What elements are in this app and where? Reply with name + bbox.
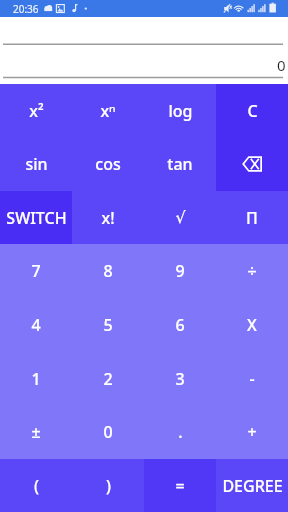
button[interactable]: 1 — [0, 352, 72, 405]
staticText: tan — [167, 153, 193, 175]
button[interactable]: x² — [0, 84, 72, 137]
staticText: cos — [95, 153, 121, 175]
button[interactable]: X — [216, 298, 288, 352]
staticText: ( — [34, 475, 39, 497]
button[interactable]: . — [144, 405, 216, 459]
button[interactable]: 8 — [72, 244, 144, 298]
staticText: 0 — [277, 55, 286, 75]
staticText: x² — [29, 100, 44, 122]
button[interactable]: cos — [72, 137, 144, 191]
button[interactable]: xⁿ — [72, 84, 144, 137]
button[interactable]: ÷ — [216, 244, 288, 298]
staticText: 4 — [31, 314, 41, 336]
staticText: SWITCH — [6, 207, 67, 229]
staticText: x! — [101, 207, 115, 229]
staticText: = — [175, 475, 185, 497]
button[interactable]: 7 — [0, 244, 72, 298]
button[interactable]: + — [216, 405, 288, 459]
staticText: 3 — [175, 368, 185, 390]
button[interactable]: 3 — [144, 352, 216, 405]
button[interactable]: log — [144, 84, 216, 137]
button[interactable]: 5 — [72, 298, 144, 352]
button[interactable]: 6 — [144, 298, 216, 352]
staticText: ÷ — [247, 260, 257, 282]
button[interactable]: = — [144, 459, 216, 512]
staticText: 7 — [31, 260, 41, 282]
button[interactable]: Π — [216, 191, 288, 244]
staticText: 6 — [175, 314, 185, 336]
staticText: xⁿ — [100, 100, 116, 122]
staticText: sin — [25, 153, 48, 175]
button[interactable]: 2 — [72, 352, 144, 405]
button[interactable]: ( — [0, 459, 72, 512]
staticText: 2 — [103, 368, 113, 390]
staticText: ) — [106, 475, 111, 497]
button[interactable]: - — [216, 352, 288, 405]
button[interactable]: 4 — [0, 298, 72, 352]
button[interactable]: tan — [144, 137, 216, 191]
staticText: 1 — [31, 368, 41, 390]
staticText: . — [178, 421, 183, 443]
staticText: 8 — [103, 260, 113, 282]
button[interactable]: ± — [0, 405, 72, 459]
button[interactable]: 0 — [72, 405, 144, 459]
button[interactable]: DEGREE — [216, 459, 288, 512]
staticText: + — [247, 421, 257, 443]
staticText: 9 — [175, 260, 185, 282]
staticText: 0 — [103, 421, 113, 443]
button[interactable]: Backspace — [216, 137, 288, 191]
button[interactable]: C — [216, 84, 288, 137]
staticText: C — [247, 100, 258, 122]
staticText: 20:36 — [13, 2, 39, 16]
staticText: log — [168, 100, 193, 122]
staticText: - — [249, 368, 255, 390]
button[interactable]: √ — [144, 191, 216, 244]
button[interactable]: x! — [72, 191, 144, 244]
staticText: 5 — [103, 314, 113, 336]
staticText: ± — [31, 421, 41, 443]
staticText: √ — [175, 208, 186, 227]
button[interactable]: SWITCH — [0, 191, 72, 244]
button[interactable]: ) — [72, 459, 144, 512]
button[interactable]: 9 — [144, 244, 216, 298]
staticText: X — [247, 314, 257, 336]
staticText: Π — [246, 207, 258, 229]
button[interactable]: sin — [0, 137, 72, 191]
staticText: DEGREE — [222, 475, 283, 497]
